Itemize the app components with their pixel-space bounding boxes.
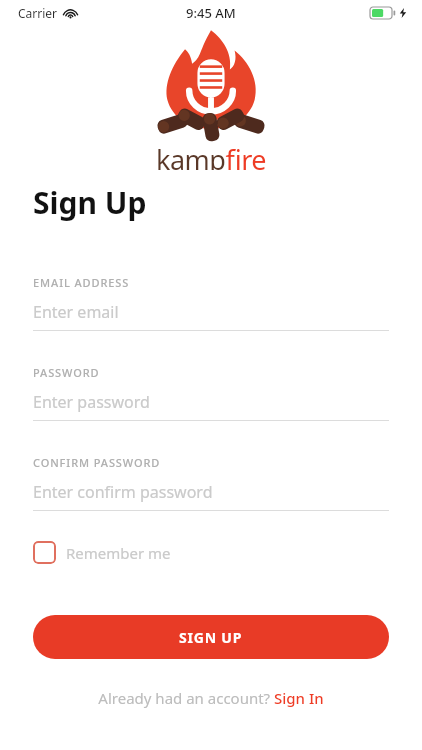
- button[interactable]: PASSWORD: [33, 365, 389, 421]
- button[interactable]: SIGN UP: [33, 615, 389, 659]
- staticText: Enter email: [33, 301, 119, 323]
- staticText: 9:45 AM: [186, 4, 236, 22]
- button[interactable]: CONFIRM PASSWORD: [33, 455, 389, 511]
- staticText: Enter confirm password: [33, 481, 213, 503]
- staticText: Enter password: [33, 391, 150, 413]
- staticText: Sign Up: [33, 182, 147, 223]
- staticText: PASSWORD: [33, 365, 100, 380]
- staticText: CONFIRM PASSWORD: [33, 455, 161, 470]
- staticText: SIGN UP: [179, 628, 243, 647]
- staticText: Remember me: [66, 543, 171, 563]
- staticText: EMAIL ADDRESS: [33, 275, 130, 290]
- button[interactable]: Already had an account? Sign In: [33, 685, 389, 711]
- staticText: kampfire: [156, 141, 267, 170]
- staticText: Already had an account? Sign In: [98, 688, 324, 708]
- button[interactable]: Remember me: [33, 539, 171, 566]
- button[interactable]: EMAIL ADDRESS: [33, 275, 389, 331]
- staticText: Carrier: [18, 5, 58, 21]
